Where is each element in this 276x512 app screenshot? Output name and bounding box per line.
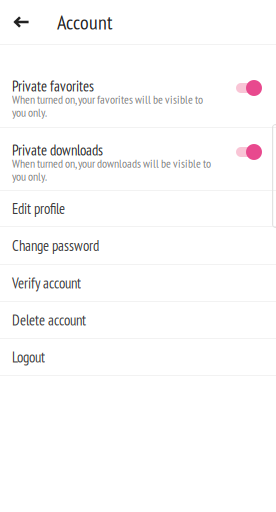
button[interactable]: Verify account bbox=[0, 265, 276, 301]
staticText: Change password bbox=[12, 236, 99, 255]
button[interactable]: Private downloads bbox=[0, 128, 276, 190]
button[interactable]: Private favorites bbox=[0, 64, 276, 127]
staticText: Private downloads bbox=[12, 140, 103, 159]
staticText: Delete account bbox=[12, 310, 86, 329]
staticText: you only. bbox=[12, 169, 47, 184]
button[interactable]: Logout bbox=[0, 339, 276, 375]
staticText: Account bbox=[57, 9, 113, 35]
button[interactable]: Delete account bbox=[0, 302, 276, 338]
staticText: Edit profile bbox=[12, 199, 65, 218]
staticText: When turned on, your favorites will be v… bbox=[12, 92, 203, 107]
button[interactable]: Back bbox=[6, 7, 36, 37]
button[interactable]: Change password bbox=[0, 227, 276, 264]
button[interactable]: Edit profile bbox=[0, 191, 276, 226]
staticText: Private favorites bbox=[12, 76, 94, 95]
staticText: When turned on, your downloads will be v… bbox=[12, 156, 211, 171]
staticText: Logout bbox=[12, 347, 45, 366]
staticText: you only. bbox=[12, 105, 47, 120]
staticText: Verify account bbox=[12, 273, 81, 292]
